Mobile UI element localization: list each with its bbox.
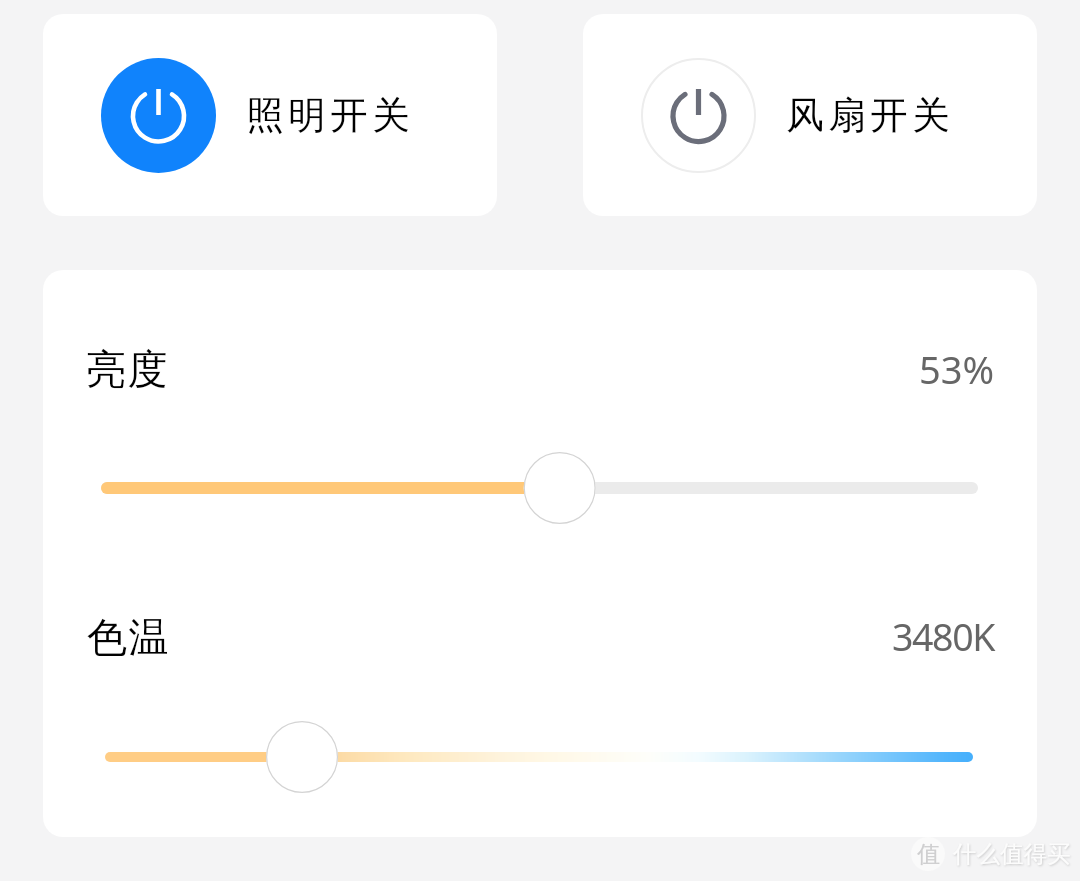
staticText: 什么值得买 bbox=[953, 839, 1071, 869]
staticText: 色温 bbox=[87, 612, 171, 662]
button[interactable]: Colour temperature slider bbox=[43, 717, 1037, 797]
staticText: 亮度 bbox=[86, 344, 170, 394]
staticText: 值 bbox=[917, 840, 940, 869]
button[interactable]: 照明开关 bbox=[43, 14, 497, 216]
button[interactable]: Brightness slider bbox=[43, 448, 1037, 528]
staticText: 照明开关 bbox=[244, 92, 412, 139]
staticText: 3480K bbox=[43, 611, 994, 662]
button[interactable]: 风扇开关 bbox=[583, 14, 1037, 216]
staticText: 53% bbox=[43, 343, 994, 395]
staticText: 风扇开关 bbox=[784, 92, 952, 139]
